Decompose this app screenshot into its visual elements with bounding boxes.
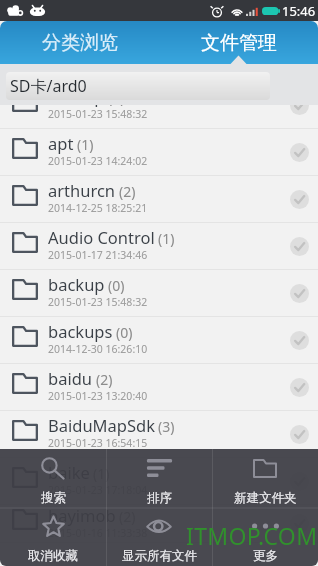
- staticText: (2): [119, 182, 136, 201]
- staticText: (2): [96, 370, 113, 389]
- staticText: apt: [48, 132, 74, 154]
- button[interactable]: 文件管理: [159, 21, 318, 64]
- button[interactable]: Select item: [290, 143, 309, 162]
- staticText: (2): [119, 507, 136, 526]
- staticText: 2015-01-17 21:34:46: [48, 248, 148, 262]
- staticText: 2015-01-23 16:54:15: [48, 436, 148, 450]
- staticText: 2015-01-23 15:48:32: [48, 107, 148, 121]
- button[interactable]: Search: [0, 449, 106, 507]
- button[interactable]: baike: [0, 458, 318, 505]
- button[interactable]: Select item: [290, 378, 309, 397]
- staticText: backup: [48, 105, 105, 107]
- staticText: 更多: [253, 548, 278, 564]
- staticText: (1): [77, 135, 94, 154]
- staticText: 新建文件夹: [234, 490, 297, 506]
- staticText: (0): [108, 276, 125, 295]
- staticText: 分类浏览: [42, 31, 118, 55]
- button[interactable]: Select item: [290, 237, 309, 256]
- button[interactable]: backup: [0, 105, 318, 129]
- staticText: BaiduMapSdk: [48, 414, 155, 436]
- button[interactable]: Select item: [290, 105, 309, 115]
- button[interactable]: apt: [0, 129, 318, 176]
- staticText: 15:46: [282, 2, 316, 20]
- button[interactable]: Show all files: [106, 507, 212, 566]
- staticText: 2015-01-23 15:48:32: [48, 295, 148, 309]
- staticText: 2014-12-25 18:25:21: [48, 201, 148, 215]
- button[interactable]: Sort: [106, 449, 212, 507]
- button[interactable]: Unfavourite: [0, 507, 106, 566]
- button[interactable]: 分类浏览: [0, 21, 159, 64]
- staticText: backups: [48, 320, 113, 342]
- button[interactable]: Select item: [290, 284, 309, 303]
- staticText: 2015-01-23 13:20:40: [48, 389, 148, 403]
- staticText: 取消收藏: [28, 548, 78, 564]
- staticText: 显示所有文件: [122, 548, 197, 564]
- button[interactable]: New folder: [212, 449, 318, 507]
- staticText: bayimob: [48, 504, 116, 526]
- staticText: 文件管理: [201, 31, 277, 55]
- staticText: (3): [158, 417, 175, 436]
- staticText: SD卡/ard0: [10, 75, 87, 97]
- staticText: ITMOP.COM: [186, 520, 318, 551]
- staticText: baike: [48, 461, 90, 483]
- staticText: 搜索: [41, 490, 66, 506]
- button[interactable]: More: [212, 507, 318, 566]
- button[interactable]: Select item: [290, 331, 309, 350]
- button[interactable]: Select item: [290, 425, 309, 444]
- staticText: 排序: [147, 490, 172, 506]
- button[interactable]: arthurcn: [0, 176, 318, 223]
- button[interactable]: Select item: [290, 514, 309, 533]
- staticText: backup: [48, 273, 105, 295]
- button[interactable]: Audio Control: [0, 223, 318, 270]
- staticText: 2014-12-30 16:26:10: [48, 342, 148, 356]
- staticText: (1): [158, 229, 175, 248]
- button[interactable]: backups: [0, 317, 318, 364]
- staticText: 2015-01-16 11:33:38: [48, 526, 148, 540]
- staticText: 2015-01-23 17:18:04: [48, 483, 148, 497]
- staticText: arthurcn: [48, 179, 116, 201]
- button[interactable]: baidu: [0, 364, 318, 411]
- staticText: (1): [93, 464, 110, 483]
- button[interactable]: Select item: [290, 190, 309, 209]
- staticText: Audio Control: [48, 226, 155, 248]
- staticText: baidu: [48, 367, 93, 389]
- button[interactable]: BaiduMapSdk: [0, 411, 318, 458]
- staticText: (0): [108, 105, 125, 107]
- staticText: 2015-01-23 14:24:02: [48, 154, 148, 168]
- button[interactable]: backup: [0, 270, 318, 317]
- staticText: (0): [116, 323, 133, 342]
- button[interactable]: bayimob: [0, 505, 318, 543]
- button[interactable]: SD卡/ard0: [6, 72, 270, 100]
